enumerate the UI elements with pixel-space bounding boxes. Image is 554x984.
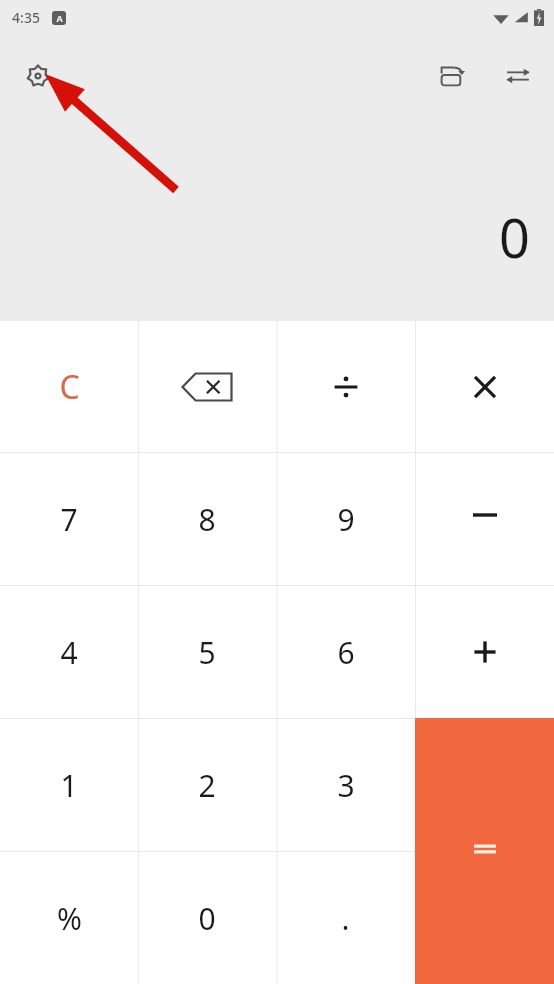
button[interactable]: Multiply	[415, 321, 554, 452]
button[interactable]: 9	[276, 453, 415, 585]
staticText: 0	[499, 200, 530, 274]
staticText: 0	[198, 898, 216, 939]
button[interactable]: Settings	[14, 52, 62, 100]
button[interactable]: C	[0, 321, 138, 452]
button[interactable]: 0	[138, 852, 276, 984]
staticText: A	[56, 12, 63, 24]
staticText: C	[59, 365, 80, 409]
staticText: 1	[60, 765, 78, 806]
button[interactable]: .	[276, 852, 415, 984]
staticText: 9	[337, 499, 355, 540]
button[interactable]: Plus	[415, 586, 554, 718]
staticText: 3	[337, 765, 355, 806]
staticText: 7	[60, 499, 78, 540]
staticText: 2	[198, 765, 216, 806]
staticText: 5	[198, 632, 216, 673]
button[interactable]: Backspace	[138, 321, 276, 452]
button[interactable]: Screen rotation	[428, 52, 476, 100]
staticText: 8	[198, 499, 216, 540]
button[interactable]: 1	[0, 719, 138, 851]
button[interactable]: 6	[276, 586, 415, 718]
staticText: 4	[60, 632, 78, 673]
staticText: 4:35	[12, 8, 40, 27]
button[interactable]: 4	[0, 586, 138, 718]
button[interactable]: Equals	[415, 718, 554, 984]
staticText: 6	[337, 632, 355, 673]
button[interactable]: %	[0, 852, 138, 984]
staticText: %	[57, 898, 82, 939]
button[interactable]: 3	[276, 719, 415, 851]
button[interactable]: Swap	[494, 52, 542, 100]
staticText: .	[341, 898, 350, 939]
button[interactable]: 7	[0, 453, 138, 585]
button[interactable]: 2	[138, 719, 276, 851]
button[interactable]: 5	[138, 586, 276, 718]
button[interactable]: Divide	[276, 321, 415, 452]
button[interactable]: 8	[138, 453, 276, 585]
button[interactable]: Minus	[415, 453, 554, 585]
